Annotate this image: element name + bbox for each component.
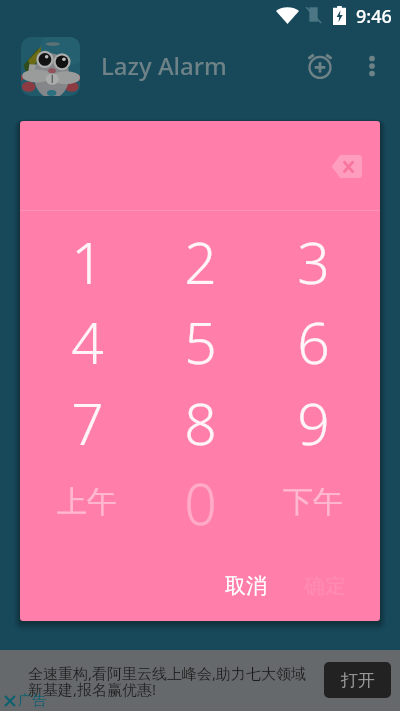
staticText: 确定 [304, 573, 346, 599]
button[interactable]: Lazy Alarm app icon [21, 37, 80, 96]
staticText: 上午 [57, 483, 117, 521]
staticText: 取消 [225, 573, 267, 599]
button[interactable]: 打开 [324, 662, 391, 698]
button[interactable]: 上午 [39, 464, 135, 540]
staticText: 广告 [18, 692, 46, 710]
staticText: 6 [297, 303, 330, 379]
button[interactable]: Backspace [319, 139, 373, 193]
button[interactable]: 4 [39, 303, 135, 379]
staticText: 4 [71, 303, 104, 379]
button[interactable]: 8 [152, 384, 248, 460]
button[interactable]: 0 [152, 464, 248, 540]
button[interactable]: Add alarm [300, 46, 340, 86]
staticText: 9 [297, 384, 330, 460]
button[interactable]: 2 [152, 223, 248, 299]
staticText: 9:46 [356, 4, 392, 29]
button[interactable]: 下午 [265, 464, 361, 540]
button[interactable]: More options [352, 46, 392, 86]
button[interactable]: 3 [265, 223, 361, 299]
staticText: 5 [184, 303, 217, 379]
staticText: 3 [297, 223, 330, 299]
button[interactable]: 取消 [204, 562, 288, 610]
staticText: 8 [184, 384, 217, 460]
button[interactable]: 7 [39, 384, 135, 460]
button[interactable]: 9 [265, 384, 361, 460]
staticText: 0 [184, 464, 217, 540]
staticText: 全速重构,看阿里云线上峰会,助力七大领域 新基建,报名赢优惠! [28, 663, 307, 700]
staticText: 7 [71, 384, 104, 460]
staticText: 下午 [283, 483, 343, 521]
staticText: 1 [71, 223, 104, 299]
staticText: 2 [184, 223, 217, 299]
button[interactable]: 6 [265, 303, 361, 379]
button[interactable]: 5 [152, 303, 248, 379]
staticText: 打开 [341, 670, 375, 691]
staticText: Lazy Alarm [101, 49, 227, 82]
button[interactable]: 1 [39, 223, 135, 299]
button[interactable]: 广告 [1, 691, 46, 711]
